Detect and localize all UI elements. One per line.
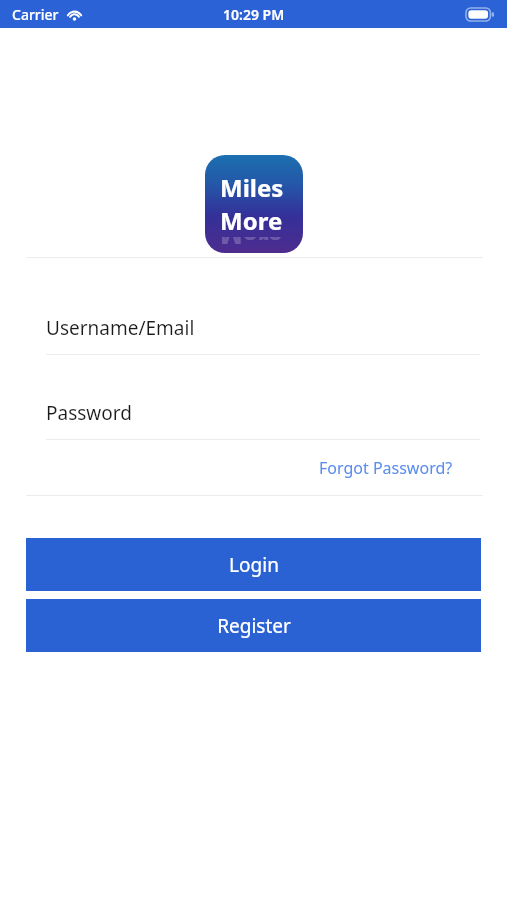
staticText: More [220,204,283,237]
button[interactable]: Password [0,400,507,426]
button[interactable]: Register [26,599,481,652]
staticText: More [220,237,283,253]
other: Wi-Fi signal [66,8,83,21]
staticText: Password [46,400,132,426]
button[interactable]: Login [26,538,481,591]
staticText: 10:29 PM [223,5,285,24]
staticText: Register [217,613,291,639]
staticText: Username/Email [46,315,195,341]
staticText: Carrier [12,5,59,24]
staticText: Forgot Password? [319,457,453,479]
other: Battery full [466,8,494,21]
staticText: Login [229,552,279,578]
staticText: Miles [220,171,284,204]
button[interactable]: Forgot Password? [303,453,507,483]
button[interactable]: Username/Email [0,315,507,341]
button[interactable]: Miles and More logo [205,155,303,253]
